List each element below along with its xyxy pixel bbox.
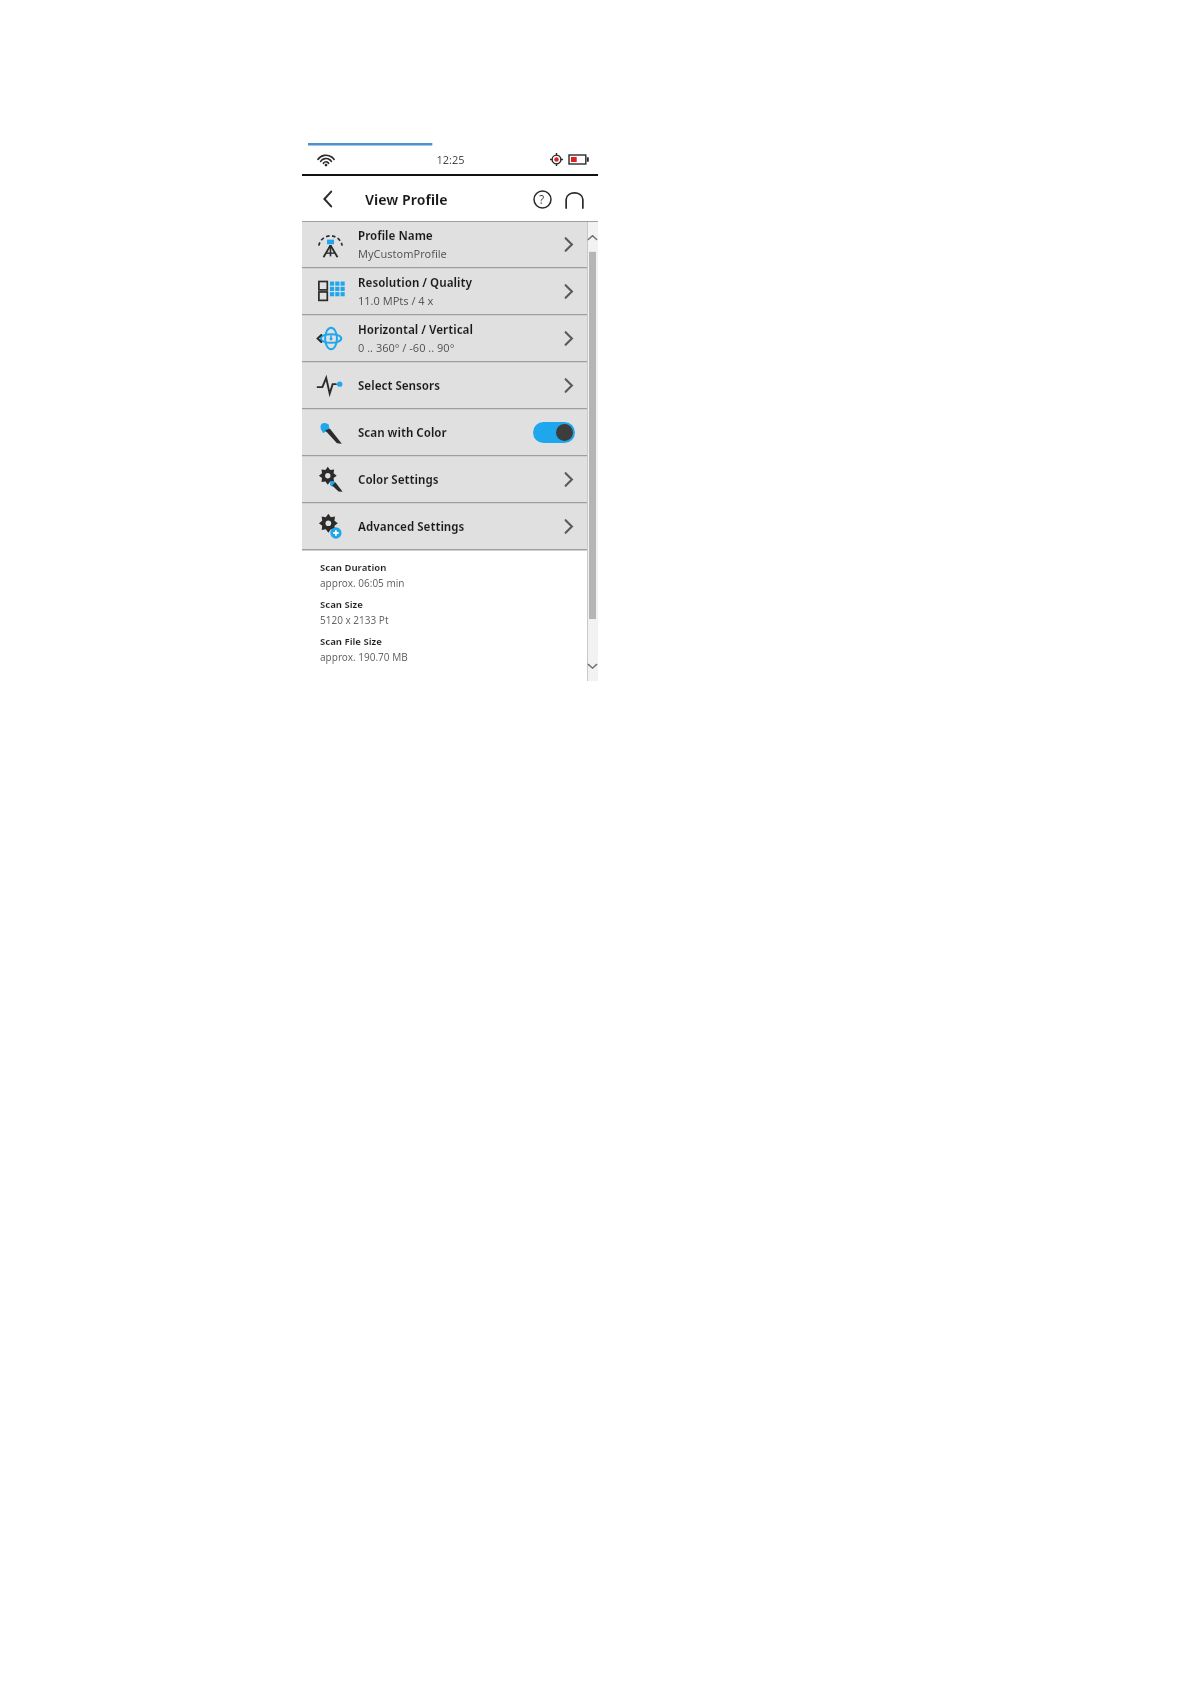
button[interactable]: Scan with Color toggle: [533, 422, 575, 443]
button[interactable]: Help: [526, 183, 558, 215]
button[interactable]: Select Sensors: [302, 363, 587, 408]
staticText: 12:25: [436, 152, 465, 167]
staticText: 5120 x 2133 Pt: [320, 613, 389, 627]
staticText: Advanced Settings: [358, 519, 549, 535]
staticText: ?: [539, 191, 545, 207]
staticText: Select Sensors: [358, 378, 549, 394]
staticText: View Profile: [365, 190, 448, 209]
button[interactable]: Advanced Settings: [302, 504, 587, 549]
staticText: Scan Duration: [320, 561, 387, 574]
staticText: Scan File Size: [320, 635, 382, 648]
staticText: Scan Size: [320, 598, 363, 611]
button[interactable]: Back: [310, 181, 346, 217]
button[interactable]: Resolution / Quality: [302, 269, 587, 314]
button[interactable]: Profile Name: [302, 222, 587, 267]
staticText: approx. 06:05 min: [320, 576, 405, 590]
button[interactable]: Color Settings: [302, 457, 587, 502]
button[interactable]: Home: [558, 183, 590, 215]
staticText: approx. 190.70 MB: [320, 650, 408, 664]
staticText: Resolution / Quality: [358, 275, 472, 291]
staticText: MyCustomProfile: [358, 246, 447, 261]
staticText: Color Settings: [358, 472, 549, 488]
button[interactable]: Scan with Color: [302, 410, 587, 455]
staticText: Profile Name: [358, 228, 433, 244]
staticText: 11.0 MPts / 4 x: [358, 293, 434, 308]
staticText: Horizontal / Vertical: [358, 322, 473, 338]
staticText: 0 .. 360° / -60 .. 90°: [358, 340, 455, 355]
staticText: Scan with Color: [358, 425, 533, 441]
button[interactable]: Horizontal / Vertical: [302, 316, 587, 361]
